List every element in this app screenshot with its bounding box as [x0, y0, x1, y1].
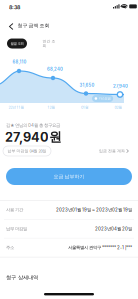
button[interactable]: Back	[6, 20, 16, 32]
staticText: 요금 납부하기	[53, 173, 84, 180]
staticText: 청구 금액 조회	[17, 22, 49, 29]
button[interactable]: 월별 조회	[7, 38, 27, 48]
staticText: 01월	[81, 105, 89, 110]
staticText: 22년11월	[8, 105, 24, 110]
staticText: 입금 전용 계좌	[99, 149, 125, 153]
staticText: 12월	[47, 105, 55, 110]
staticText: 31,650	[79, 82, 94, 88]
staticText: 02월	[114, 105, 122, 110]
staticText: 8:38	[9, 4, 20, 10]
staticText: 27,940	[113, 83, 128, 89]
staticText: 2023년01월 19일 ~ 2023년02월 19일	[56, 207, 132, 212]
staticText: 주소	[6, 245, 14, 250]
staticText: 연간 조회	[42, 39, 55, 48]
staticText: 가스요금	[99, 96, 111, 101]
staticText: 68,110	[13, 59, 27, 64]
staticText: 서울특별시 관악구 ******* 2-1 |***	[68, 245, 132, 250]
staticText: 납부 마감일 04월 20일	[7, 149, 46, 153]
staticText: 청구 상세내역	[6, 274, 38, 281]
staticText: 27,940원	[5, 129, 62, 145]
staticText: 68,240	[47, 66, 63, 72]
staticText: 2023년04월 20일	[95, 226, 132, 231]
staticText: 납부 마감일	[6, 226, 27, 231]
button[interactable]: 연간 조회	[41, 38, 57, 48]
staticText: 월별 조회	[10, 41, 23, 46]
button[interactable]: 요금 납부하기	[6, 168, 132, 185]
staticText: 김★연님의 04월 총 청구요금	[6, 122, 60, 128]
button[interactable]: 입금 전용 계좌	[99, 146, 128, 156]
button[interactable]: 납부 마감일 04월 20일	[3, 146, 51, 156]
staticText: 사용 기간	[6, 207, 23, 212]
